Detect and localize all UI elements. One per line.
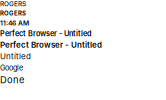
- staticText: Perfect Browser - Untitled: [0, 29, 92, 38]
- staticText: Perfect Browser - Untitled: [0, 40, 102, 50]
- staticText: Done: [0, 74, 24, 85]
- staticText: Untitled: [0, 52, 31, 61]
- staticText: ROGERS: [0, 10, 26, 17]
- staticText: 11:46 AM: [0, 19, 29, 27]
- staticText: Google: [0, 63, 23, 72]
- staticText: ROGERS: [0, 0, 26, 8]
